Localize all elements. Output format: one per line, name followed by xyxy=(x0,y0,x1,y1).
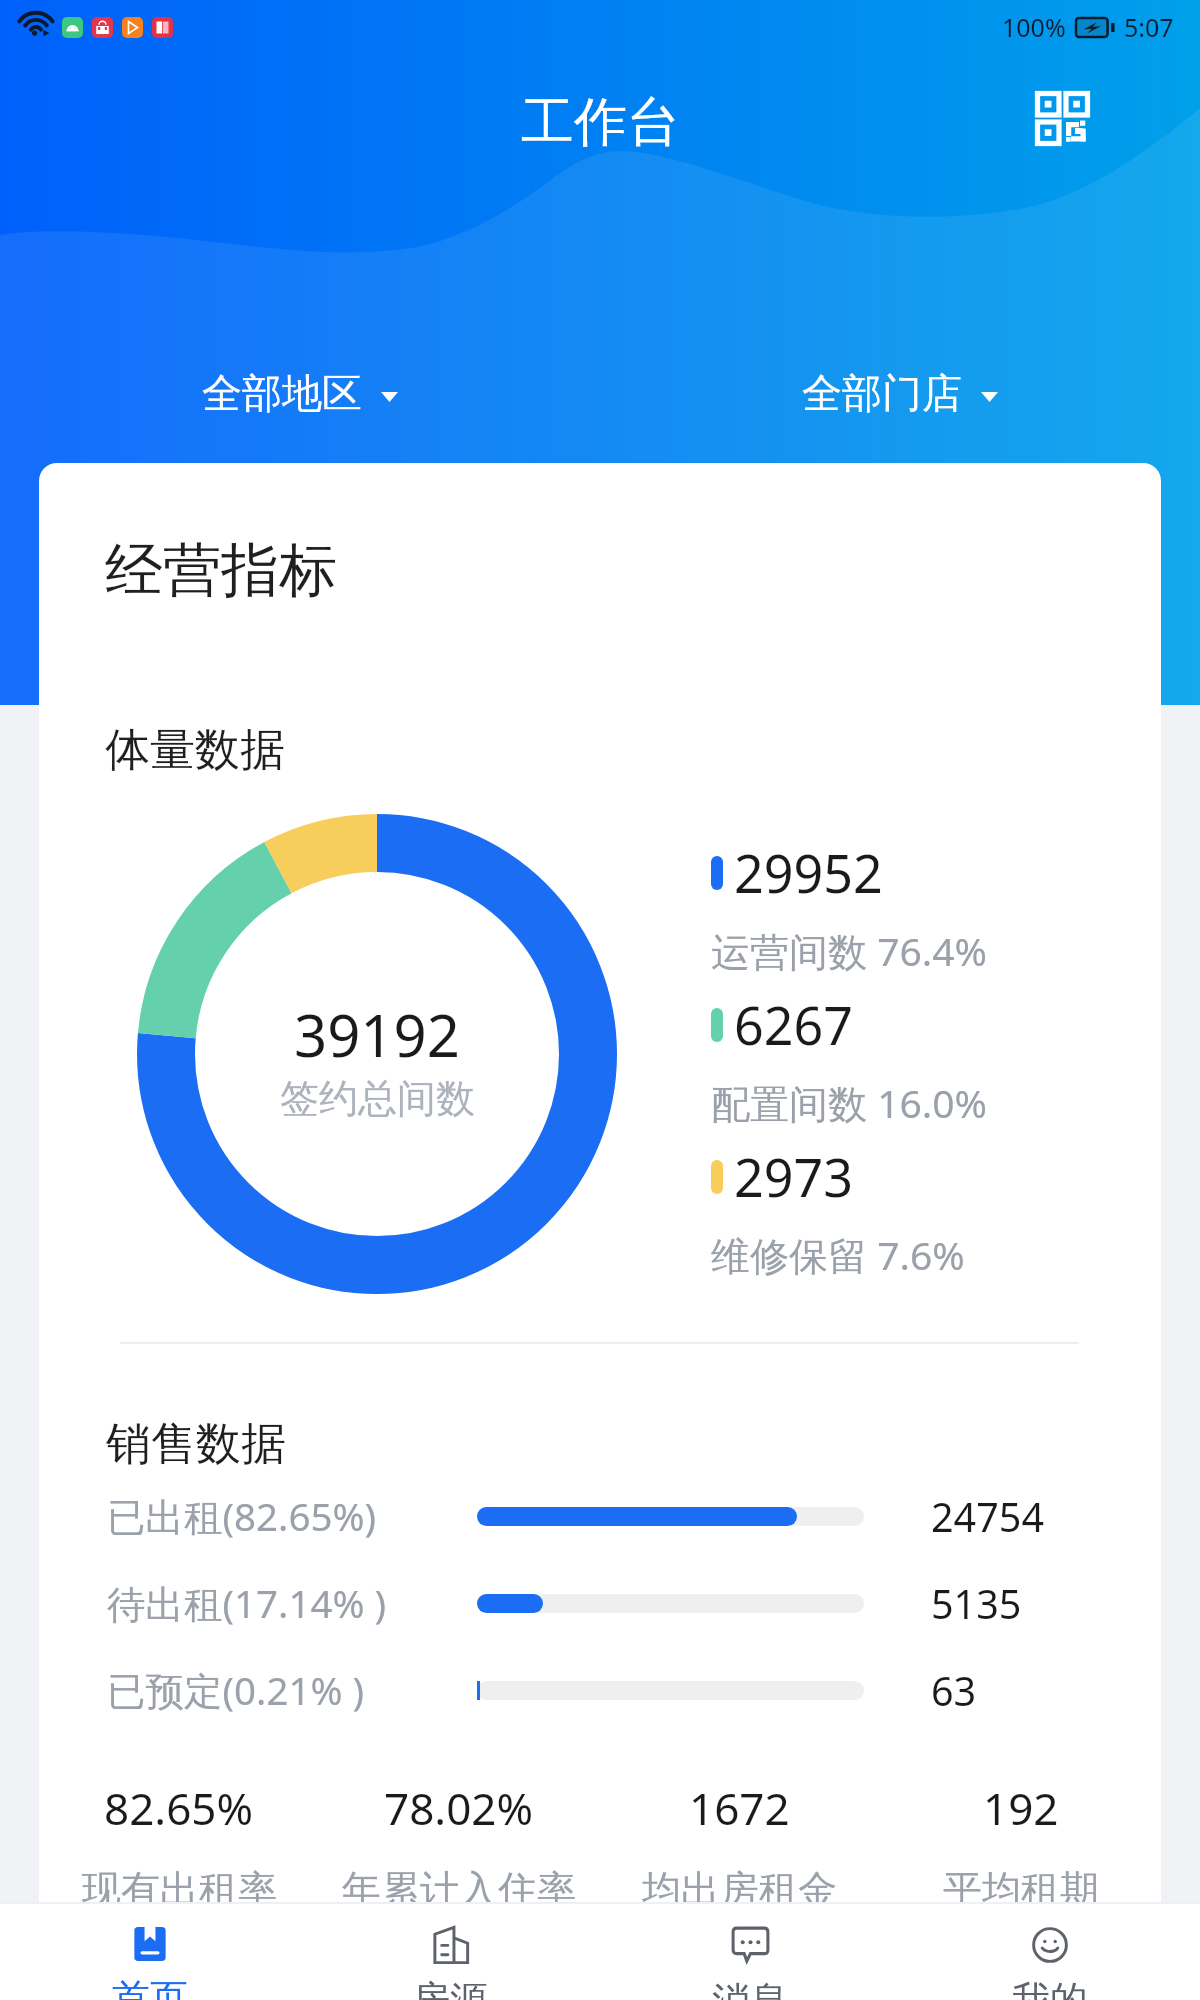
button[interactable]: 已预定(0.21% ) xyxy=(39,1664,1161,1717)
staticText: 已预定(0.21% ) xyxy=(107,1664,364,1717)
staticText: 192 xyxy=(983,1778,1059,1838)
staticText: 首页 xyxy=(112,1974,188,2000)
button[interactable]: Scan QR code xyxy=(1021,77,1103,159)
staticText: 经营指标 xyxy=(105,534,337,607)
staticText: 销售数据 xyxy=(106,1416,286,1473)
staticText: 年累计入住率 xyxy=(342,1865,576,1914)
staticText: 已出租(82.65%) xyxy=(107,1490,376,1543)
button[interactable]: 82.65% xyxy=(39,1778,319,1914)
staticText: 78.02% xyxy=(384,1778,534,1838)
staticText: 配置间数 16.0% xyxy=(711,1076,987,1129)
button[interactable]: 全部地区 xyxy=(190,360,410,426)
button[interactable]: 待出租(17.14% ) xyxy=(39,1577,1161,1630)
button[interactable]: 已出租(82.65%) xyxy=(39,1490,1161,1543)
staticText: 我的 xyxy=(1012,1976,1088,2000)
staticText: 现有出租率 xyxy=(82,1865,277,1914)
staticText: 全部地区 xyxy=(202,368,362,418)
staticText: 消息 xyxy=(712,1977,788,2000)
button[interactable]: 全部门店 xyxy=(790,360,1010,426)
staticText: 全部门店 xyxy=(802,368,962,418)
staticText: 均出房租金 xyxy=(642,1865,837,1914)
button[interactable]: 192 xyxy=(880,1778,1161,1914)
staticText: 房源 xyxy=(412,1976,488,2000)
staticText: 29952 xyxy=(734,837,883,908)
staticText: 6267 xyxy=(734,989,853,1060)
staticText: 2973 xyxy=(734,1141,853,1212)
staticText: 工作台 xyxy=(521,89,680,156)
staticText: 5:07 xyxy=(1124,10,1174,44)
staticText: 签约总间数 xyxy=(280,1074,475,1123)
staticText: 39192 xyxy=(294,995,460,1074)
button[interactable]: 78.02% xyxy=(319,1778,599,1914)
staticText: 运营间数 76.4% xyxy=(711,924,987,977)
button[interactable]: 首页 xyxy=(0,1904,300,2000)
staticText: 5135 xyxy=(931,1577,1022,1630)
staticText: 100% xyxy=(1002,10,1066,44)
staticText: 待出租(17.14% ) xyxy=(107,1577,387,1630)
staticText: 63 xyxy=(931,1664,977,1717)
staticText: 24754 xyxy=(931,1490,1044,1543)
button[interactable]: 房源 xyxy=(300,1904,600,2000)
button[interactable]: 消息 xyxy=(600,1904,900,2000)
staticText: 平均租期 xyxy=(943,1865,1099,1914)
staticText: 1672 xyxy=(689,1778,790,1838)
staticText: 体量数据 xyxy=(105,722,285,779)
staticText: 维修保留 7.6% xyxy=(711,1228,965,1281)
button[interactable]: 我的 xyxy=(900,1904,1200,2000)
staticText: 82.65% xyxy=(104,1778,254,1838)
button[interactable]: 1672 xyxy=(599,1778,880,1914)
